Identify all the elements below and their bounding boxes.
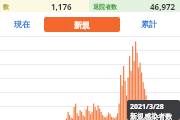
staticText: 46,972 (150, 1, 176, 12)
button[interactable]: 累計 (120, 16, 178, 32)
staticText: 数 (3, 3, 9, 11)
staticText: 現在 (14, 19, 30, 29)
button[interactable]: 新規 (44, 17, 120, 32)
button[interactable]: 現在 (2, 16, 42, 32)
staticText: 累計 (141, 19, 157, 29)
staticText: 退院者数 (93, 3, 117, 11)
staticText: 1,176 (51, 1, 72, 12)
button[interactable]: Data point details (127, 100, 180, 120)
staticText: 新規 (74, 20, 90, 30)
staticText: 新規感染者数 (130, 112, 172, 120)
button[interactable]: 数 (0, 0, 89, 12)
button[interactable]: 退院者数 (89, 0, 180, 12)
staticText: 2021/3/28 (130, 102, 164, 112)
